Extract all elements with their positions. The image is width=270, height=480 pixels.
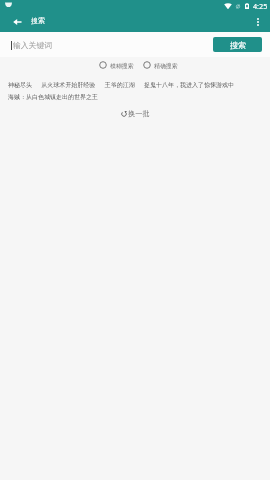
button[interactable]: 换一批 bbox=[118, 107, 153, 120]
staticText: 精确搜索 bbox=[154, 62, 178, 69]
staticText: 输入关键词 bbox=[13, 40, 52, 50]
staticText: 搜索 bbox=[230, 40, 246, 50]
staticText: 海贼：从白色城镇走出的世界之王 bbox=[8, 93, 98, 101]
button[interactable]: 返回 bbox=[9, 14, 25, 30]
staticText: 4:25 bbox=[253, 1, 268, 11]
button[interactable]: 精确搜索 bbox=[142, 59, 179, 71]
staticText: 换一批 bbox=[128, 109, 150, 118]
staticText: 搜索 bbox=[31, 16, 45, 25]
staticText: 模糊搜索 bbox=[110, 62, 134, 69]
staticText: 神秘尽头 从火球术开始肝经验 王爷的江湖 捉鬼十八年，我进入了惊悚游戏中 bbox=[8, 81, 235, 89]
button[interactable]: 更多选项 bbox=[251, 15, 265, 29]
button[interactable]: 搜索 bbox=[213, 37, 262, 52]
button[interactable]: 模糊搜索 bbox=[98, 59, 135, 71]
